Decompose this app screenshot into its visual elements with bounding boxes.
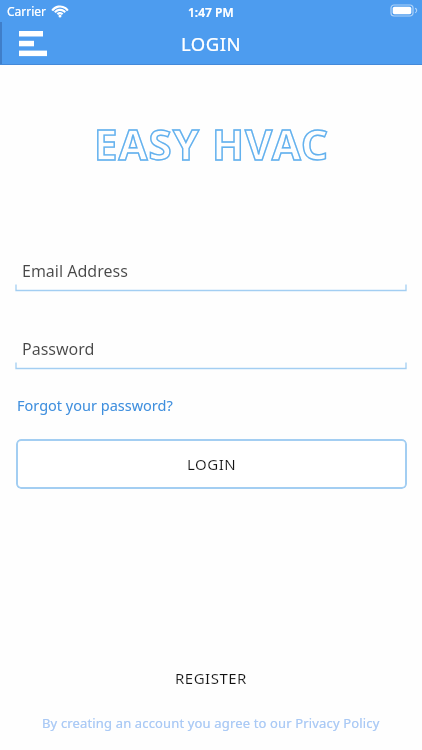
staticText: Password (22, 338, 95, 360)
staticText: 1:47 PM (188, 4, 234, 20)
button[interactable]: Forgot your password? (17, 395, 173, 415)
button[interactable]: Password (16, 336, 406, 362)
staticText: REGISTER (175, 668, 247, 688)
button[interactable] (11, 24, 55, 64)
button[interactable]: By creating an account you agree to our … (42, 714, 380, 732)
staticText: By creating an account you agree to our … (42, 714, 380, 732)
staticText: LOGIN (181, 31, 242, 56)
button[interactable]: REGISTER (175, 668, 247, 688)
button[interactable]: Email Address (16, 258, 406, 284)
staticText: LOGIN (187, 454, 237, 474)
staticText: Forgot your password? (17, 395, 173, 415)
staticText: Email Address (22, 260, 128, 282)
staticText: Carrier (7, 3, 47, 19)
staticText: EASY HVAC (94, 115, 329, 172)
button[interactable]: LOGIN (16, 439, 407, 489)
